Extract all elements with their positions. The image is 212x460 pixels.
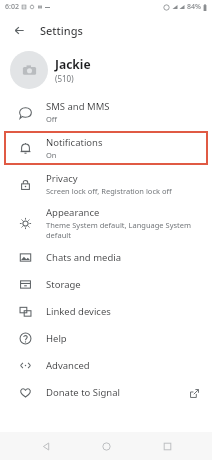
button[interactable]: Jackie bbox=[0, 46, 212, 94]
staticText: Donate to Signal bbox=[46, 386, 120, 399]
staticText: Chats and media bbox=[46, 251, 122, 264]
staticText: Notifications bbox=[46, 136, 103, 149]
staticText: Screen lock off, Registration lock off bbox=[46, 186, 172, 196]
button[interactable]: Home bbox=[91, 432, 121, 460]
button[interactable]: Storage bbox=[0, 271, 212, 298]
button[interactable]: Linked devices bbox=[0, 298, 212, 325]
button[interactable]: Chats and media bbox=[0, 244, 212, 271]
staticText: (510) bbox=[55, 73, 74, 84]
staticText: Storage bbox=[46, 278, 81, 291]
staticText: Help bbox=[46, 332, 67, 345]
button[interactable]: Notifications bbox=[4, 131, 208, 165]
button[interactable]: Advanced bbox=[0, 352, 212, 379]
button[interactable]: Privacy bbox=[0, 166, 212, 202]
staticText: 84% bbox=[187, 2, 201, 12]
staticText: Appearance bbox=[46, 206, 100, 219]
staticText: SMS and MMS bbox=[46, 100, 110, 113]
button[interactable]: Recents bbox=[152, 432, 182, 460]
button[interactable]: Back bbox=[31, 432, 61, 460]
staticText: Theme System default, Language System de… bbox=[46, 220, 212, 240]
button[interactable]: Appearance bbox=[0, 202, 212, 244]
button[interactable]: Back bbox=[4, 15, 34, 45]
staticText: Off bbox=[46, 114, 58, 124]
staticText: Linked devices bbox=[46, 305, 111, 318]
other: Opens in browser bbox=[186, 385, 202, 401]
staticText: Settings bbox=[40, 23, 83, 38]
button[interactable]: Donate to Signal bbox=[0, 379, 212, 406]
staticText: On bbox=[46, 150, 57, 160]
staticText: Jackie bbox=[55, 56, 91, 72]
staticText: 6:02 bbox=[5, 2, 19, 12]
button[interactable]: Help bbox=[0, 325, 212, 352]
staticText: Advanced bbox=[46, 359, 90, 372]
staticText: Privacy bbox=[46, 172, 78, 185]
button[interactable]: SMS and MMS bbox=[0, 94, 212, 130]
